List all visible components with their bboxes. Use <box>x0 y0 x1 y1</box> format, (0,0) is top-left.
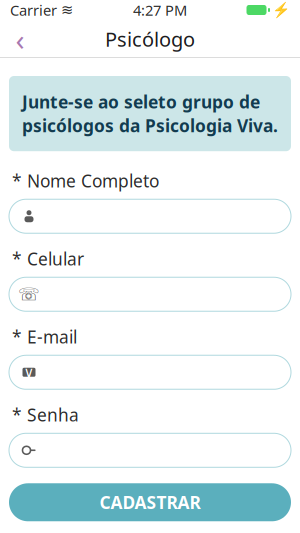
button[interactable]: Senha <box>9 433 291 467</box>
staticText: * E-mail <box>12 325 77 348</box>
staticText: 4:27 PM <box>133 0 187 20</box>
staticText: Psicólogo <box>105 26 195 52</box>
staticText: ∨ <box>23 364 34 380</box>
button[interactable]: E-mail <box>9 355 291 389</box>
staticText: ☏ <box>18 284 40 304</box>
staticText: ‹ <box>15 19 24 58</box>
staticText: * Celular <box>12 247 84 270</box>
button[interactable]: Celular <box>9 277 291 311</box>
staticText: ≋ <box>61 2 73 18</box>
staticText: CADASTRAR <box>99 490 200 514</box>
staticText: Carrier <box>10 0 57 20</box>
button[interactable]: Back <box>0 20 40 58</box>
staticText: * Senha <box>12 403 79 426</box>
staticText: ⚡ <box>272 2 290 18</box>
staticText: Junte-se ao seleto grupo de psicólogos d… <box>22 90 278 137</box>
button[interactable]: Nome Completo <box>9 199 291 233</box>
button[interactable]: CADASTRAR <box>9 483 291 521</box>
staticText: * Nome Completo <box>12 169 159 192</box>
